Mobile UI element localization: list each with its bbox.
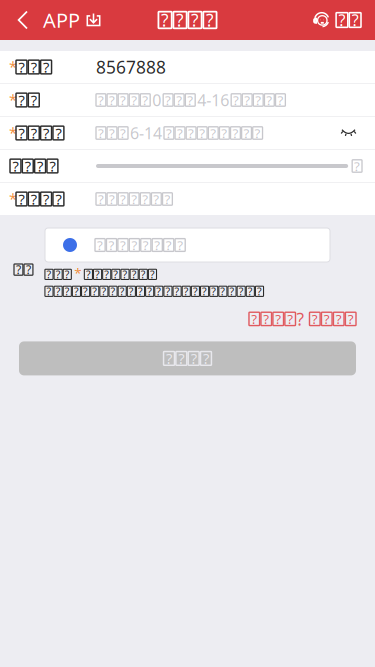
staticText: ? — [150, 267, 155, 281]
staticText: ? — [131, 190, 137, 208]
staticText: ? — [154, 236, 160, 254]
button[interactable]: ? — [249, 304, 375, 333]
staticText: ? — [243, 124, 249, 142]
staticText: ? — [348, 310, 354, 328]
staticText: ? — [296, 307, 304, 330]
staticText: 6-14 — [130, 122, 162, 144]
staticText: ? — [287, 310, 293, 328]
staticText: * — [74, 264, 81, 282]
staticText: ? — [131, 91, 137, 109]
staticText: ? — [120, 190, 126, 208]
staticText: ? — [56, 267, 61, 281]
staticText: ? — [122, 267, 127, 281]
staticText: ? — [120, 236, 126, 254]
staticText: ? — [31, 90, 37, 110]
staticText: ? — [248, 284, 253, 298]
staticText: ? — [110, 284, 115, 298]
staticText: ? — [98, 124, 104, 142]
staticText: 8567888 — [96, 55, 166, 78]
staticText: ? — [98, 91, 104, 109]
staticText: 0 — [152, 89, 161, 111]
staticText: ? — [113, 267, 118, 281]
staticText: ? — [97, 236, 103, 254]
staticText: 4-16 — [197, 89, 229, 111]
staticText: ? — [131, 236, 137, 254]
staticText: ? — [178, 349, 184, 368]
staticText: ? — [141, 267, 146, 281]
staticText: ? — [95, 267, 100, 281]
staticText: ? — [101, 284, 106, 298]
staticText: ? — [165, 91, 171, 109]
staticText: ? — [239, 284, 244, 298]
staticText: ? — [255, 124, 261, 142]
staticText: ? — [184, 284, 189, 298]
staticText: ? — [255, 91, 261, 109]
staticText: APP — [43, 7, 80, 33]
staticText: ? — [143, 236, 149, 254]
staticText: ? — [104, 267, 109, 281]
staticText: ? — [108, 236, 114, 254]
staticText: ? — [109, 91, 115, 109]
staticText: ? — [153, 190, 159, 208]
staticText: ? — [220, 284, 225, 298]
staticText: ? — [18, 57, 24, 77]
staticText: ? — [199, 124, 205, 142]
staticText: ? — [147, 284, 152, 298]
staticText: ? — [109, 124, 115, 142]
staticText: ? — [31, 189, 37, 209]
staticText: ? — [129, 284, 134, 298]
staticText: ? — [56, 284, 61, 298]
button[interactable]: Show password — [341, 128, 375, 137]
staticText: ? — [161, 8, 169, 31]
staticText: ? — [203, 349, 209, 368]
staticText: ? — [188, 124, 194, 142]
staticText: ? — [18, 123, 24, 143]
staticText: ? — [65, 284, 70, 298]
staticText: ? — [55, 189, 61, 209]
staticText: ? — [156, 284, 161, 298]
staticText: ? — [43, 189, 49, 209]
staticText: ? — [43, 57, 49, 77]
staticText: ? — [109, 190, 115, 208]
staticText: ? — [277, 91, 283, 109]
staticText: ? — [352, 9, 359, 31]
staticText: ? — [176, 8, 184, 31]
button[interactable]: Customer service — [312, 0, 375, 40]
staticText: ? — [18, 189, 24, 209]
staticText: ? — [176, 91, 182, 109]
staticText: ? — [142, 91, 148, 109]
staticText: ? — [12, 156, 18, 176]
staticText: ? — [232, 124, 238, 142]
staticText: ? — [233, 91, 239, 109]
staticText: ? — [83, 284, 88, 298]
staticText: ? — [16, 262, 21, 277]
staticText: ? — [206, 8, 214, 31]
staticText: ? — [43, 123, 49, 143]
staticText: ? — [210, 124, 216, 142]
staticText: ? — [263, 310, 269, 328]
staticText: ? — [46, 267, 51, 281]
staticText: ? — [177, 236, 183, 254]
staticText: * — [9, 90, 17, 109]
staticText: ? — [229, 284, 234, 298]
staticText: ? — [266, 91, 272, 109]
staticText: ? — [25, 156, 31, 176]
staticText: ? — [120, 284, 125, 298]
staticText: ? — [74, 284, 79, 298]
staticText: * — [9, 123, 17, 142]
staticText: ? — [338, 9, 345, 31]
button[interactable]: ? — [0, 228, 375, 262]
staticText: ? — [165, 284, 170, 298]
staticText: ? — [86, 267, 91, 281]
staticText: ? — [244, 91, 250, 109]
staticText: ? — [191, 8, 199, 31]
staticText: ? — [132, 267, 137, 281]
button[interactable]: APP — [0, 0, 112, 40]
staticText: ? — [251, 310, 257, 328]
staticText: ? — [166, 349, 172, 368]
staticText: ? — [138, 284, 143, 298]
staticText: ? — [202, 284, 207, 298]
staticText: ? — [65, 267, 70, 281]
button[interactable]: ? — [0, 341, 375, 375]
staticText: ? — [31, 57, 37, 77]
